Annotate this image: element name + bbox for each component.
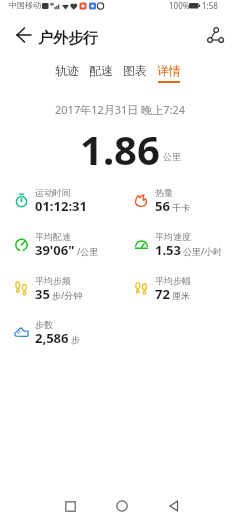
staticText: 公里 xyxy=(163,151,181,162)
staticText: 2017年12月31日 晚上7:24 xyxy=(55,102,186,117)
staticText: 100% xyxy=(169,0,190,11)
staticText: 平均步频 xyxy=(35,275,71,286)
staticText: 详情 xyxy=(157,63,181,78)
staticText: /公里 xyxy=(77,245,99,257)
staticText: 56 xyxy=(155,197,170,215)
button[interactable] xyxy=(196,20,230,50)
staticText: 1.86 xyxy=(80,122,160,169)
staticText: 千卡 xyxy=(172,202,190,213)
button[interactable]: 平均配速 xyxy=(14,231,99,259)
staticText: 图表 xyxy=(123,63,147,78)
staticText: 01:12:31 xyxy=(35,197,87,215)
button[interactable] xyxy=(9,20,39,50)
staticText: 步/分钟 xyxy=(52,289,83,301)
staticText: 步数 xyxy=(35,319,53,330)
staticText: 热量 xyxy=(155,187,173,198)
button[interactable]: 热量 xyxy=(134,187,190,215)
staticText: 配速 xyxy=(89,63,113,78)
staticText: 运动时间 xyxy=(35,187,71,198)
staticText: 2,586 xyxy=(35,329,69,347)
button[interactable]: 运动时间 xyxy=(14,187,87,215)
staticText: 1.53 xyxy=(155,241,181,259)
button[interactable] xyxy=(50,492,90,520)
button[interactable]: 图表 xyxy=(123,63,147,83)
button[interactable]: 平均步频 xyxy=(14,275,83,303)
button[interactable] xyxy=(154,492,194,520)
button[interactable]: 平均步幅 xyxy=(134,275,191,303)
button[interactable]: 配速 xyxy=(89,63,113,83)
button[interactable] xyxy=(102,492,142,520)
staticText: 公里/小时 xyxy=(183,245,223,257)
staticText: 72 xyxy=(155,285,170,303)
button[interactable]: 平均速度 xyxy=(134,231,223,259)
staticText: 平均步幅 xyxy=(155,275,191,286)
staticText: 步 xyxy=(71,334,80,345)
button[interactable]: 步数 xyxy=(14,319,80,347)
staticText: 轨迹 xyxy=(55,63,79,78)
staticText: 平均配速 xyxy=(35,231,71,242)
staticText: 厘米 xyxy=(172,290,190,301)
staticText: 中国移动 xyxy=(9,0,41,10)
staticText: 35 xyxy=(35,285,50,303)
staticText: 平均速度 xyxy=(155,231,191,242)
staticText: 户外步行 xyxy=(38,29,98,48)
staticText: 1:58 xyxy=(202,0,218,11)
staticText: 39'06" xyxy=(35,241,75,259)
button[interactable]: 轨迹 xyxy=(55,63,79,83)
button[interactable]: 详情 xyxy=(157,63,181,83)
